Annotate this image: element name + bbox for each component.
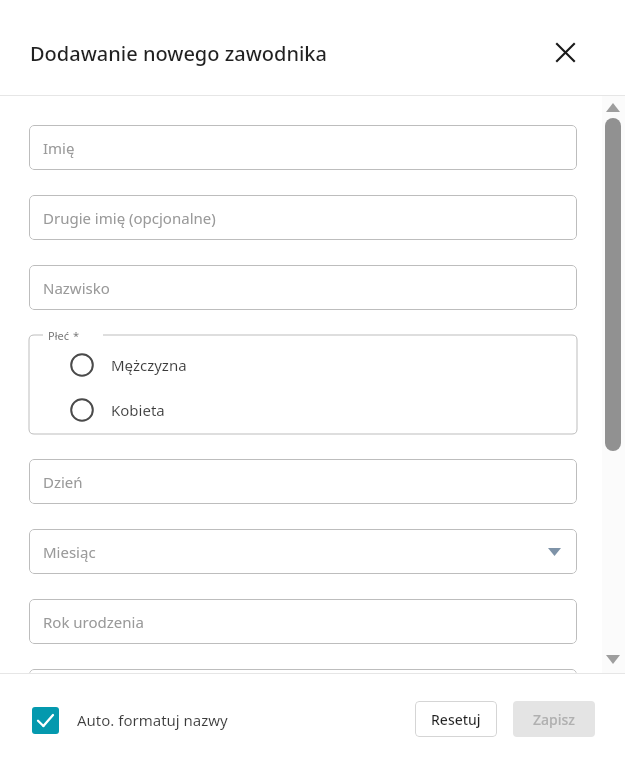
button[interactable]: Dzień (29, 459, 577, 504)
button[interactable]: Zamknij (545, 32, 585, 72)
button[interactable]: Miesiąc (29, 529, 577, 574)
staticText: * (73, 328, 80, 343)
button[interactable]: Imię (29, 125, 577, 170)
button[interactable]: Kobieta (70, 393, 590, 427)
button[interactable]: Resetuj (415, 701, 497, 737)
staticText: Resetuj (431, 710, 481, 729)
button[interactable]: Nazwisko (29, 265, 577, 310)
staticText: Płeć (48, 328, 69, 343)
staticText: Dodawanie nowego zawodnika (30, 40, 327, 67)
staticText: Kobieta (111, 400, 165, 420)
staticText: Auto. formatuj nazwy (77, 710, 228, 730)
staticText: Mężczyzna (111, 355, 187, 375)
button[interactable] (29, 669, 577, 673)
button[interactable]: Auto. formatuj nazwy (32, 700, 228, 740)
staticText: Drugie imię (opcjonalne) (43, 208, 216, 228)
staticText: Imię (43, 138, 75, 158)
button[interactable]: Zapisz (513, 701, 595, 737)
staticText: Dzień (43, 472, 83, 492)
button[interactable]: Drugie imię (opcjonalne) (29, 195, 577, 240)
button[interactable]: Rok urodzenia (29, 599, 577, 644)
staticText: Miesiąc (43, 542, 96, 562)
button[interactable]: Mężczyzna (70, 348, 590, 382)
staticText: Rok urodzenia (43, 612, 144, 632)
staticText: Nazwisko (43, 278, 110, 298)
staticText: Zapisz (533, 710, 575, 729)
